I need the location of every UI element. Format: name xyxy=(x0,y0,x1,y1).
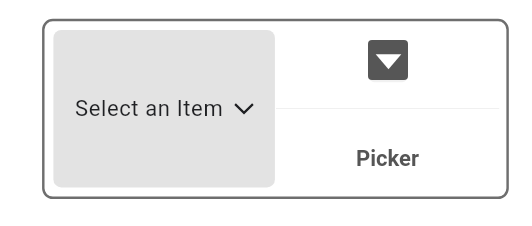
button[interactable]: Open picker xyxy=(368,40,408,80)
button[interactable]: Select an Item xyxy=(53,30,275,188)
staticText: Picker xyxy=(356,146,419,172)
staticText: Select an Item xyxy=(75,96,224,122)
